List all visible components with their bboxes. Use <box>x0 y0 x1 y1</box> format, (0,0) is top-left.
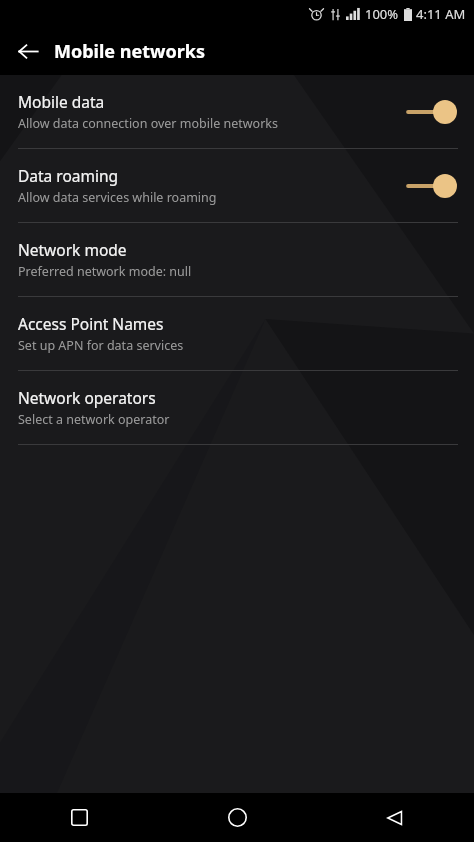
button[interactable]: Home <box>158 793 316 842</box>
button[interactable]: Recents <box>0 793 158 842</box>
button[interactable]: Mobile data <box>0 75 474 148</box>
staticText: Access Point Names <box>18 313 164 334</box>
button[interactable]: Back <box>8 31 48 71</box>
button[interactable]: Data roaming <box>0 149 474 222</box>
staticText: Allow data services while roaming <box>18 189 217 206</box>
staticText: Mobile networks <box>54 39 205 64</box>
staticText: Mobile data <box>18 91 105 112</box>
button[interactable]: Network mode <box>0 223 474 296</box>
button[interactable]: Back <box>316 793 474 842</box>
staticText: Preferred network mode: null <box>18 263 192 280</box>
button[interactable]: Network operators <box>0 371 474 444</box>
staticText: Allow data connection over mobile networ… <box>18 115 278 132</box>
staticText: Set up APN for data services <box>18 337 184 354</box>
staticText: Data roaming <box>18 165 119 186</box>
staticText: Network mode <box>18 239 127 260</box>
staticText: Network operators <box>18 387 156 408</box>
button[interactable]: Access Point Names <box>0 297 474 370</box>
staticText: Select a network operator <box>18 411 170 428</box>
button[interactable]: Mobile data toggle <box>406 97 458 127</box>
staticText: 100% <box>365 5 399 23</box>
button[interactable]: Data roaming toggle <box>406 171 458 201</box>
staticText: 4:11 AM <box>416 5 466 23</box>
